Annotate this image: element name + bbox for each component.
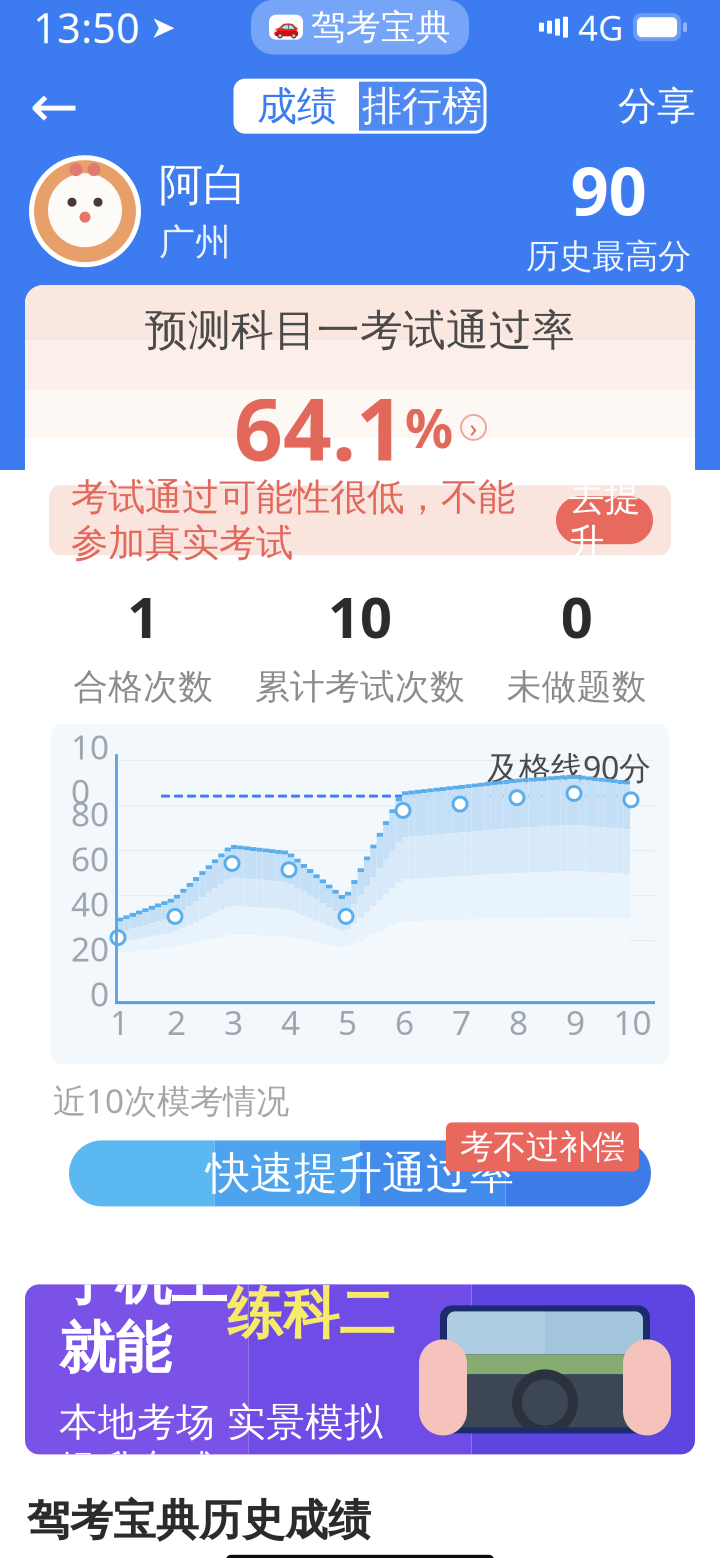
staticText: 合格次数 <box>73 666 213 708</box>
staticText: 10 <box>328 579 392 654</box>
staticText: 8 <box>509 1000 528 1044</box>
staticText: 去提升 <box>568 476 640 564</box>
staticText: 100 <box>71 724 109 813</box>
staticText: 7 <box>452 1000 471 1044</box>
staticText: 累计考试次数 <box>255 666 465 708</box>
staticText: 快速提升通过率 <box>206 1146 514 1200</box>
staticText: 分享 <box>618 82 696 130</box>
staticText: 5 <box>338 1000 357 1044</box>
staticText: › <box>469 411 477 444</box>
staticText: 驾考宝典 <box>311 6 451 48</box>
button[interactable]: 快速提升通过率 <box>69 1140 651 1206</box>
staticText: 阿白 <box>159 158 247 212</box>
staticText: 驾考宝典历史成绩 <box>27 1494 371 1547</box>
staticText: 4G <box>578 4 623 50</box>
staticText: 1 <box>110 1000 129 1044</box>
staticText: 预测科目一考试通过率 <box>145 304 575 357</box>
staticText: 3 <box>224 1000 243 1044</box>
staticText: 6 <box>395 1000 414 1044</box>
staticText: 0 <box>561 579 593 654</box>
staticText: 🚗 <box>272 15 299 39</box>
staticText: ← <box>29 73 78 139</box>
staticText: 2 <box>167 1000 186 1044</box>
staticText: 考不过补偿 <box>460 1126 625 1167</box>
staticText: 本地考场 实景模拟 提升车感 <box>59 1399 383 1494</box>
staticText: 及格线90分 <box>487 746 651 789</box>
staticText: 60 <box>71 836 109 881</box>
button[interactable]: 返回 <box>17 73 91 139</box>
staticText: 20 <box>71 926 109 971</box>
button[interactable]: 分享 <box>611 73 703 139</box>
staticText: 练科二 <box>227 1279 395 1348</box>
staticText: 9 <box>566 1000 585 1044</box>
staticText: 40 <box>71 881 109 926</box>
button[interactable]: 成绩 <box>235 80 359 132</box>
staticText: 考试通过可能性很低，不能参加真实考试 <box>71 474 515 566</box>
staticText: 64.1 <box>234 371 405 484</box>
button[interactable]: 90 <box>526 145 691 277</box>
button[interactable]: 手机上就能 <box>0 1236 720 1454</box>
staticText: 90 <box>570 145 646 234</box>
staticText: 广州 <box>159 220 231 264</box>
button[interactable]: 阿白 <box>29 155 247 267</box>
staticText: 排行榜 <box>362 82 482 131</box>
staticText: 80 <box>71 791 109 836</box>
staticText: 近10次模考情况 <box>53 1078 289 1122</box>
staticText: 4 <box>281 1000 300 1044</box>
staticText: 手机上就能 <box>59 1245 227 1383</box>
button[interactable]: 考不过补偿 <box>446 1122 639 1171</box>
staticText: 成绩 <box>257 82 337 131</box>
staticText: 10 <box>613 1000 651 1044</box>
staticText: 1 <box>127 579 159 654</box>
button[interactable]: 去提升 <box>556 496 653 544</box>
button[interactable]: 排行榜 <box>359 80 485 132</box>
button[interactable]: 64.1 <box>234 371 486 484</box>
staticText: % <box>405 392 453 463</box>
staticText: 0 <box>90 971 109 1016</box>
staticText: 13:50 <box>33 0 140 55</box>
staticText: 历史最高分 <box>526 236 691 277</box>
staticText: ➤ <box>150 10 176 45</box>
staticText: 未做题数 <box>507 666 647 708</box>
